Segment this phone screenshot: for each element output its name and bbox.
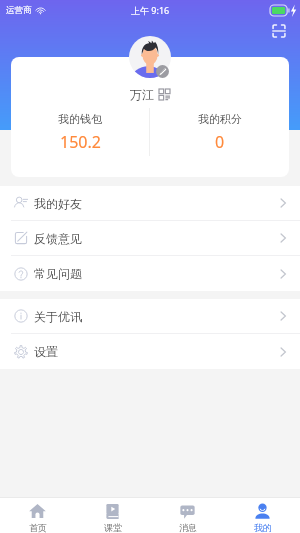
staticText: 150.2 [60,131,101,153]
staticText: 我的 [254,522,272,533]
staticText: 设置 [34,344,58,359]
button[interactable]: 我的 [225,498,300,533]
button[interactable]: 我的钱包 [11,112,149,153]
staticText: 0 [215,131,225,153]
staticText: 我的积分 [198,112,242,126]
button[interactable]: 消息 [150,498,225,533]
staticText: 我的钱包 [58,112,102,126]
button[interactable]: 反馈意见 [0,221,300,256]
button[interactable]: 关于优讯 [0,299,300,334]
staticText: 课堂 [104,522,122,533]
staticText: 消息 [179,522,197,533]
button[interactable]: Avatar [129,36,171,78]
button[interactable]: 我的积分 [150,112,289,153]
button[interactable]: Scan [270,22,288,40]
button[interactable]: 常见问题 [0,256,300,291]
staticText: 我的好友 [34,196,82,211]
staticText: 上午 9:16 [131,4,170,16]
button[interactable]: 我的好友 [0,186,300,221]
button[interactable]: QR code [159,89,170,100]
button[interactable]: 设置 [0,334,300,369]
button[interactable]: 课堂 [75,498,150,533]
staticText: 反馈意见 [34,231,82,246]
staticText: 首页 [29,522,47,533]
button[interactable]: Edit avatar [156,65,169,78]
button[interactable]: 首页 [0,498,75,533]
staticText: 万江 [130,87,154,102]
staticText: 运营商 [6,5,32,16]
staticText: 常见问题 [34,266,82,281]
staticText: 关于优讯 [34,309,82,324]
